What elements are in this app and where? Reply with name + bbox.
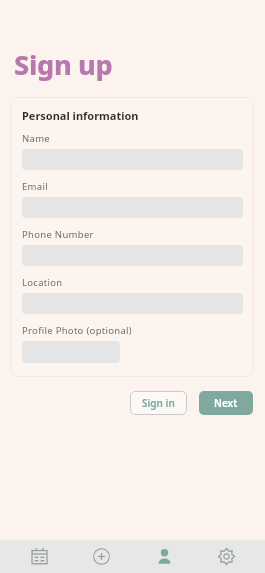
staticText: Next: [214, 396, 238, 410]
button[interactable]: Settings: [199, 540, 253, 573]
button[interactable]: Profile: [137, 540, 191, 573]
staticText: Email: [22, 180, 48, 193]
button[interactable]: Next: [199, 391, 253, 415]
button[interactable]: Add: [74, 540, 128, 573]
staticText: Phone Number: [22, 228, 94, 241]
staticText: Profile Photo (optional): [22, 324, 133, 337]
button[interactable]: Sign in: [130, 391, 187, 415]
staticText: Name: [22, 132, 50, 145]
staticText: Sign up: [14, 46, 113, 83]
staticText: Personal information: [22, 108, 139, 123]
staticText: Sign in: [142, 396, 175, 410]
button[interactable]: Calendar: [12, 540, 66, 573]
staticText: Location: [22, 276, 63, 289]
